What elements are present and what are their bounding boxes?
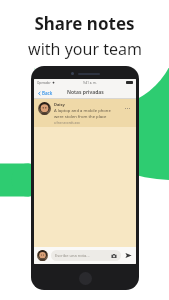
staticText: A laptop and a mobile phone were stolen …	[54, 108, 111, 119]
button[interactable]: Send	[124, 251, 133, 260]
button[interactable]: Back	[36, 88, 54, 98]
button[interactable]: Attach photo	[111, 253, 117, 259]
staticText: Escribe una nota...	[55, 253, 90, 258]
button[interactable]: Escribe una nota...	[51, 250, 121, 261]
staticText: 9:41 a. m.	[83, 81, 97, 85]
staticText: Daisy	[54, 102, 65, 107]
button[interactable]: More options	[123, 106, 132, 111]
staticText: a few seconds ago	[54, 121, 80, 124]
staticText: Back	[42, 90, 53, 96]
staticText: Operador	[37, 81, 51, 85]
staticText: with your team	[28, 38, 142, 60]
staticText: Notas privadas	[67, 89, 104, 96]
button[interactable]: Home	[79, 272, 92, 285]
button[interactable]: Daisy	[34, 99, 136, 127]
staticText: Share notes	[34, 12, 135, 35]
